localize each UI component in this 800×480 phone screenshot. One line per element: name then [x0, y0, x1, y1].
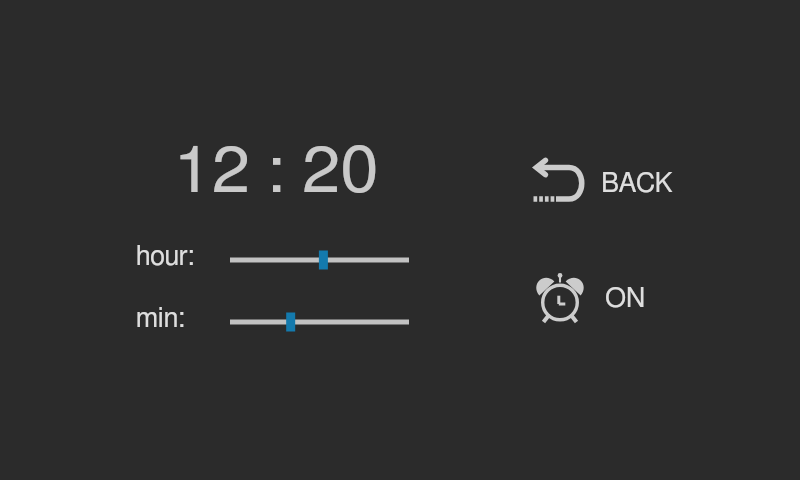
staticText: hour: [136, 243, 195, 270]
button[interactable]: Back [533, 152, 673, 208]
button[interactable]: 12 : 20 [76, 132, 476, 212]
staticText: ON [605, 285, 646, 312]
button[interactable]: Alarm on [535, 272, 646, 324]
staticText: 12 : 20 [173, 140, 379, 205]
staticText: BACK [601, 170, 673, 197]
other: Back [533, 158, 584, 202]
button[interactable]: hour slider [230, 242, 409, 278]
button[interactable]: min slider [230, 304, 409, 340]
staticText: min: [136, 305, 185, 332]
other: Alarm on [535, 273, 585, 324]
